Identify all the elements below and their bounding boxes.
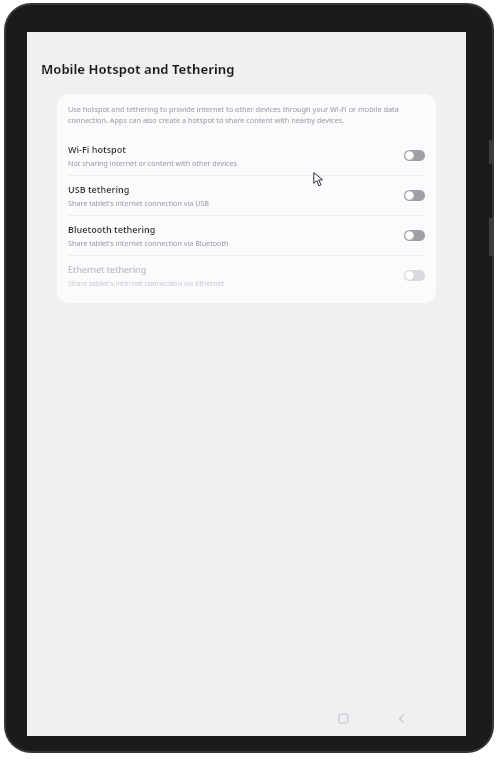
staticText: Share tablet's internet connection via B… bbox=[68, 238, 229, 248]
staticText: Share tablet's internet connection via U… bbox=[68, 198, 210, 208]
button[interactable]: Toggle Bluetooth tethering bbox=[404, 230, 425, 241]
button[interactable]: Home bbox=[330, 705, 356, 731]
staticText: Bluetooth tethering bbox=[68, 223, 156, 235]
staticText: Mobile Hotspot and Tethering bbox=[41, 60, 235, 78]
staticText: Share tablet's internet connection via E… bbox=[68, 278, 225, 288]
staticText: USB tethering bbox=[68, 183, 130, 195]
button[interactable]: Bluetooth tethering bbox=[57, 216, 436, 255]
button[interactable]: Wi-Fi hotspot bbox=[57, 136, 436, 175]
staticText: Wi-Fi hotspot bbox=[68, 143, 126, 155]
button[interactable]: USB tethering bbox=[57, 176, 436, 215]
staticText: Use hotspot and tethering to provide int… bbox=[68, 104, 425, 125]
staticText: Not sharing internet or content with oth… bbox=[68, 158, 238, 168]
button[interactable]: Toggle Wi-Fi hotspot bbox=[404, 150, 425, 161]
button[interactable]: Ethernet tethering bbox=[57, 256, 436, 295]
button[interactable]: Back bbox=[388, 705, 414, 731]
button[interactable]: Toggle USB tethering bbox=[404, 190, 425, 201]
staticText: Ethernet tethering bbox=[68, 263, 147, 275]
button[interactable]: Toggle Ethernet tethering bbox=[404, 270, 425, 281]
